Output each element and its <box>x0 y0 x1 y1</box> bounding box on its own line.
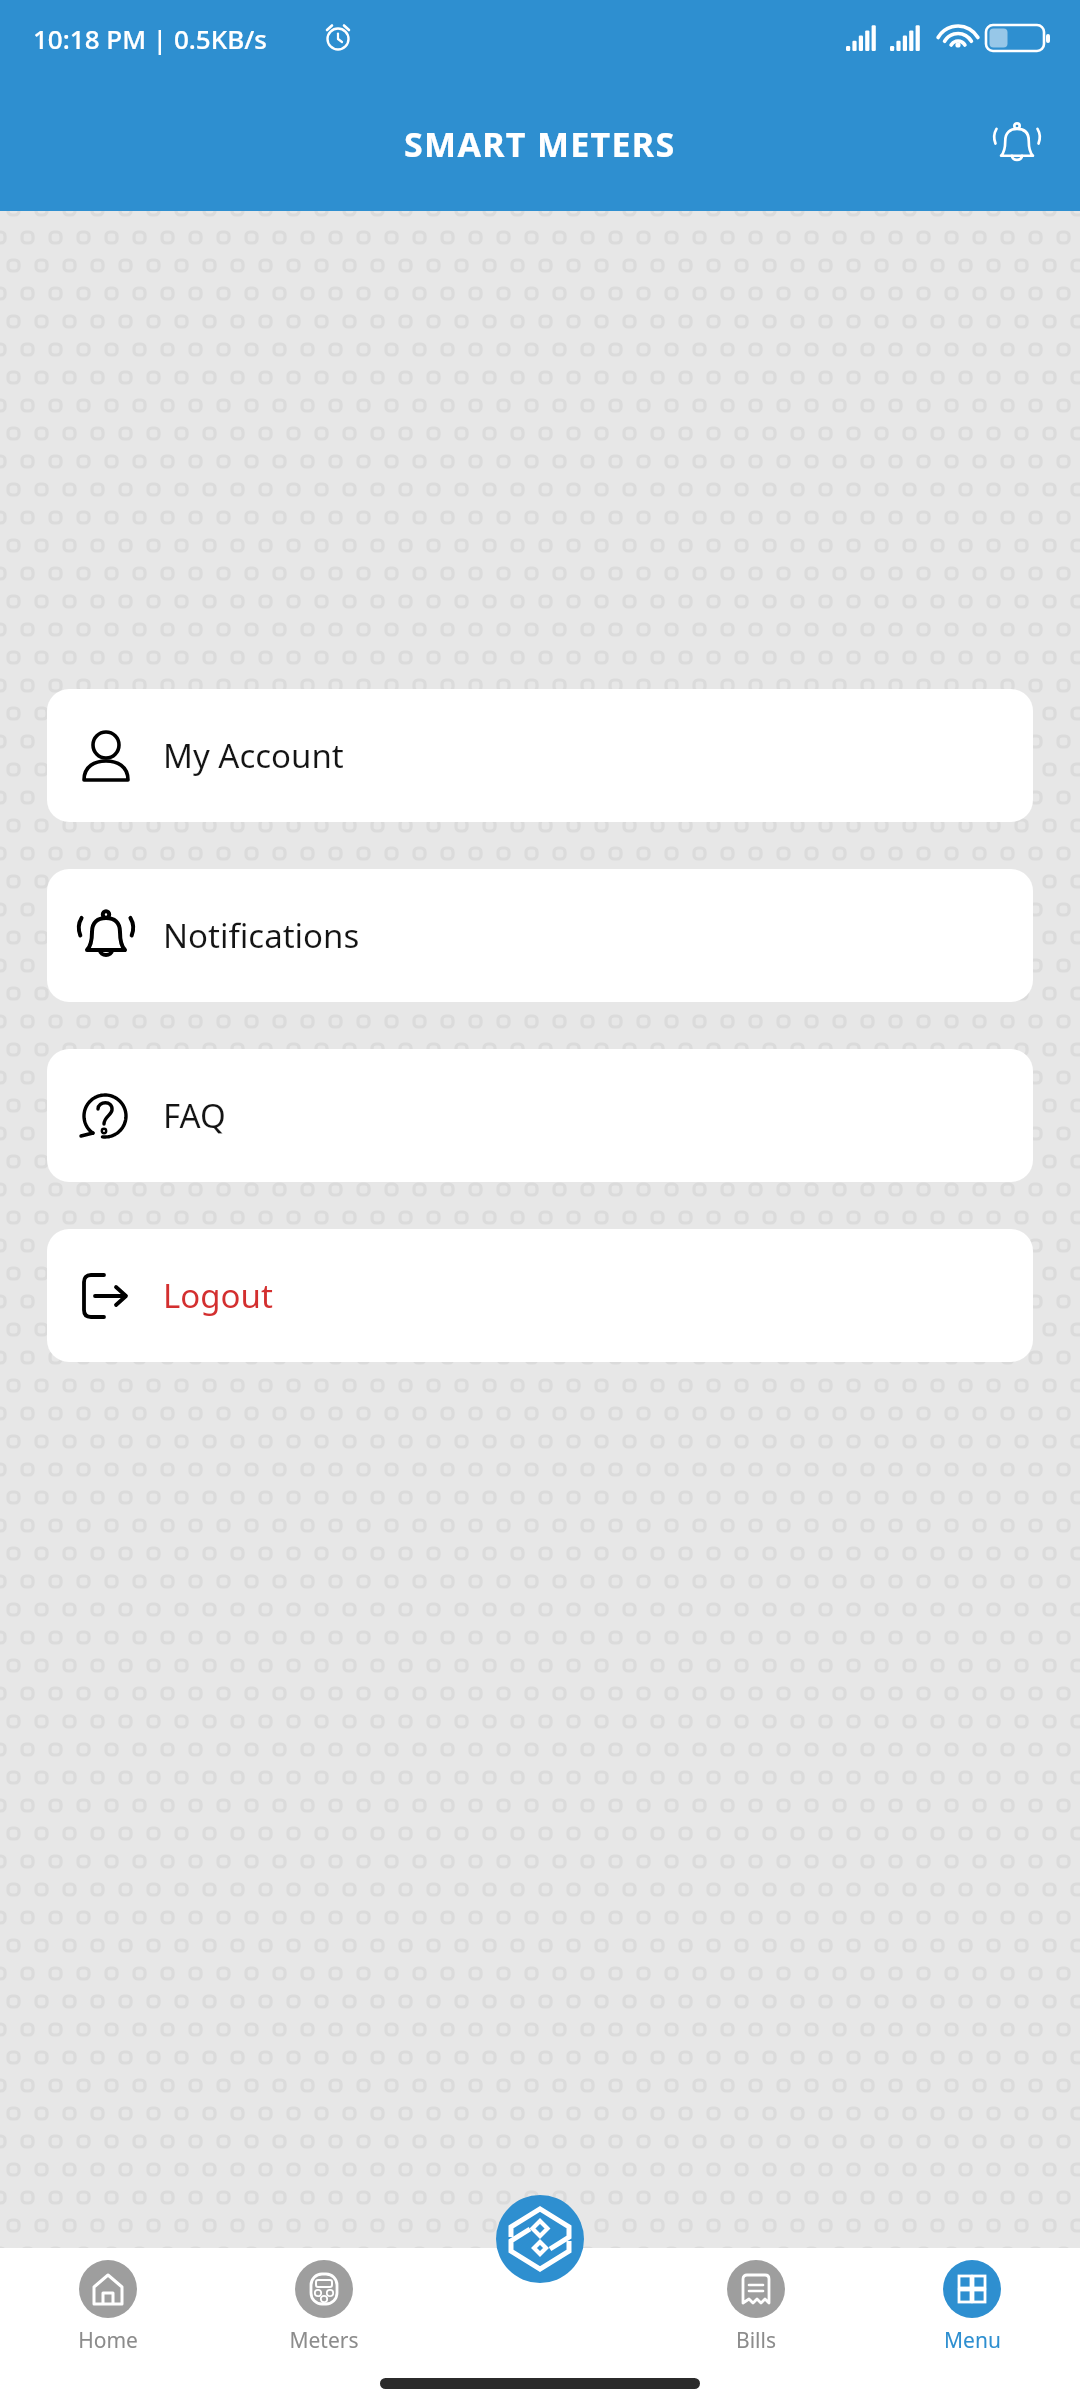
staticText: Bills <box>736 2326 776 2355</box>
button[interactable]: My Account <box>47 689 1033 822</box>
button[interactable]: Menu <box>864 2260 1080 2355</box>
button[interactable]: Notifications <box>47 869 1033 1002</box>
staticText: Home <box>78 2326 138 2355</box>
button[interactable]: Bills <box>648 2260 864 2355</box>
button[interactable]: Home <box>0 2260 216 2355</box>
staticText: My Account <box>163 733 344 778</box>
button[interactable]: Meters <box>216 2260 432 2355</box>
button[interactable]: Logout <box>47 1229 1033 1362</box>
staticText: Logout <box>163 1273 273 1318</box>
staticText: Menu <box>944 2326 1001 2355</box>
staticText: Notifications <box>163 913 360 958</box>
staticText: Meters <box>289 2326 359 2355</box>
staticText: FAQ <box>163 1093 226 1138</box>
button[interactable]: Notifications <box>978 105 1056 183</box>
staticText: SMART METERS <box>404 121 676 167</box>
button[interactable]: FAQ <box>47 1049 1033 1182</box>
staticText: 10:18 PM | 0.5KB/s <box>33 21 267 56</box>
button[interactable]: Smart Meters home <box>495 2194 585 2284</box>
